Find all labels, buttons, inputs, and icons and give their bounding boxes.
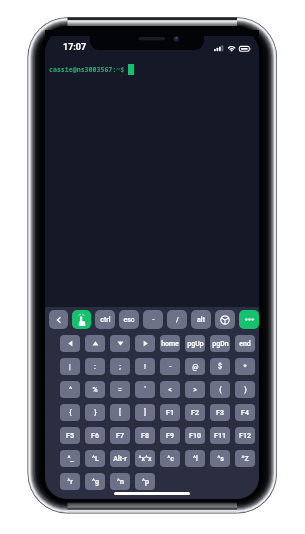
button[interactable]: home (160, 335, 180, 352)
button[interactable]: ^s (210, 450, 230, 467)
button[interactable]: F8 (135, 427, 155, 444)
button[interactable]: ) (235, 381, 255, 398)
button[interactable]: end (235, 335, 255, 352)
staticText: } (94, 409, 97, 417)
button[interactable]: - (143, 310, 163, 329)
staticText: alt (197, 316, 205, 324)
button[interactable]: Up (85, 335, 105, 352)
staticText: | (69, 363, 71, 371)
button[interactable]: F3 (210, 404, 230, 421)
button[interactable]: ^L (85, 450, 105, 467)
staticText: - (169, 363, 172, 371)
button[interactable]: Settings (215, 310, 235, 329)
button[interactable]: Down (110, 335, 130, 352)
staticText: F11 (214, 432, 226, 440)
button[interactable]: ctrl (95, 310, 115, 329)
staticText: ' (144, 386, 146, 394)
staticText: F3 (216, 409, 224, 417)
button[interactable]: | (60, 358, 80, 375)
button[interactable]: ^c (160, 450, 180, 467)
button[interactable]: ^ (60, 381, 80, 398)
button[interactable]: = (110, 381, 130, 398)
staticText: F7 (116, 432, 124, 440)
staticText: / (176, 316, 179, 324)
staticText: % (92, 386, 98, 394)
button[interactable]: More options (239, 310, 259, 329)
button[interactable]: - (160, 358, 180, 375)
button[interactable]: F9 (160, 427, 180, 444)
button[interactable]: Right (135, 335, 155, 352)
staticText: ^Z (241, 455, 249, 463)
button[interactable]: pgDn (210, 335, 230, 352)
button[interactable]: [ (110, 404, 130, 421)
button[interactable]: $ (210, 358, 230, 375)
staticText: ^x^x (138, 455, 152, 463)
staticText: { (69, 409, 72, 417)
staticText: F5 (66, 432, 74, 440)
button[interactable]: Touch keyboard (72, 310, 91, 329)
staticText: ^r (67, 478, 73, 486)
button[interactable]: F12 (235, 427, 255, 444)
button[interactable]: F7 (110, 427, 130, 444)
staticText: F2 (191, 409, 199, 417)
staticText: cassie@ns3003567:~$ (49, 65, 125, 74)
staticText: ^n (117, 478, 124, 486)
button[interactable]: : (85, 358, 105, 375)
button[interactable]: ^r (60, 473, 80, 490)
button[interactable]: alt (191, 310, 211, 329)
button[interactable]: F6 (85, 427, 105, 444)
staticText: * (243, 363, 247, 371)
button[interactable]: Left (60, 335, 80, 352)
staticText: ^ (69, 386, 72, 394)
button[interactable]: ; (110, 358, 130, 375)
button[interactable]: F2 (185, 404, 205, 421)
staticText: 17:07 (63, 42, 87, 53)
staticText: $ (218, 363, 222, 371)
button[interactable]: ^g (85, 473, 105, 490)
button[interactable]: Back (49, 310, 68, 329)
staticText: F9 (166, 432, 174, 440)
button[interactable]: ^p (135, 473, 155, 490)
button[interactable]: { (60, 404, 80, 421)
button[interactable]: ^x^x (135, 450, 155, 467)
staticText: ^_ (67, 455, 74, 463)
button[interactable]: ] (135, 404, 155, 421)
button[interactable]: pgUp (185, 335, 205, 352)
staticText: ] (144, 409, 146, 417)
button[interactable]: F5 (60, 427, 80, 444)
button[interactable]: * (235, 358, 255, 375)
button[interactable]: ^l (185, 450, 205, 467)
button[interactable]: > (185, 381, 205, 398)
staticText: > (193, 386, 197, 394)
button[interactable]: } (85, 404, 105, 421)
button[interactable]: ^n (110, 473, 130, 490)
staticText: F10 (189, 432, 201, 440)
staticText: ^p (142, 478, 149, 486)
button[interactable]: ! (135, 358, 155, 375)
button[interactable]: ^_ (60, 450, 80, 467)
staticText: ^l (193, 455, 198, 463)
button[interactable]: F4 (235, 404, 255, 421)
button[interactable]: ( (210, 381, 230, 398)
staticText: [ (119, 409, 121, 417)
staticText: ^L (92, 455, 99, 463)
button[interactable]: ^Z (235, 450, 255, 467)
staticText: ! (144, 363, 146, 371)
button[interactable]: F10 (185, 427, 205, 444)
button[interactable]: % (85, 381, 105, 398)
staticText: ) (244, 386, 247, 394)
staticText: ^c (167, 455, 174, 463)
staticText: Alt-r (113, 455, 127, 463)
button[interactable]: Alt-r (110, 450, 130, 467)
staticText: end (239, 340, 251, 348)
staticText: @ (192, 363, 199, 371)
staticText: ^s (217, 455, 224, 463)
button[interactable]: / (167, 310, 187, 329)
staticText: < (168, 386, 172, 394)
button[interactable]: F11 (210, 427, 230, 444)
button[interactable]: esc (119, 310, 139, 329)
button[interactable]: ' (135, 381, 155, 398)
button[interactable]: @ (185, 358, 205, 375)
button[interactable]: < (160, 381, 180, 398)
button[interactable]: F1 (160, 404, 180, 421)
